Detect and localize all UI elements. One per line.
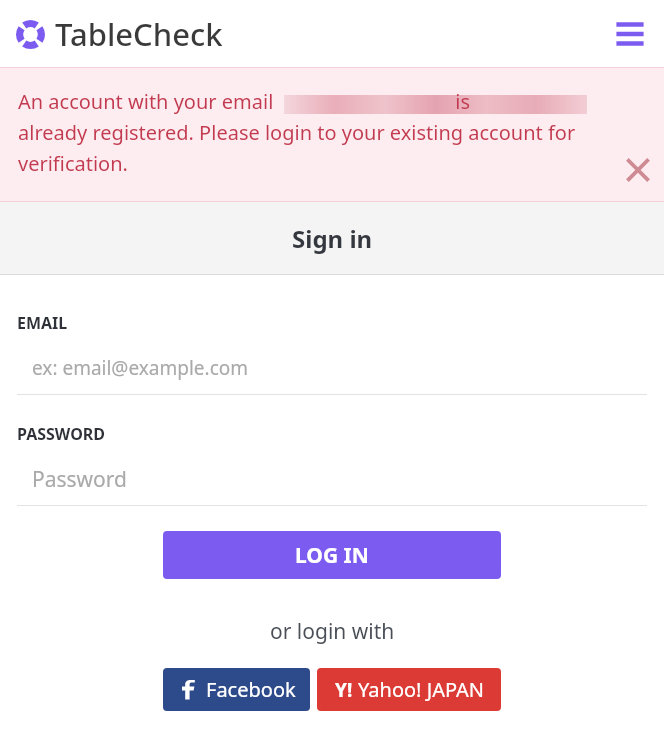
- staticText: LOG IN: [295, 541, 369, 570]
- button[interactable]: Open navigation menu: [613, 17, 647, 51]
- staticText: ex: email@example.com: [32, 355, 249, 381]
- staticText: TableCheck: [55, 13, 223, 55]
- button[interactable]: TableCheck: [16, 13, 223, 55]
- staticText: Facebook: [206, 676, 296, 703]
- staticText: Sign in: [292, 222, 373, 255]
- button[interactable]: Password: [17, 465, 647, 497]
- staticText: PASSWORD: [17, 423, 106, 445]
- staticText: Password: [32, 465, 127, 494]
- button[interactable]: LOG IN: [163, 531, 501, 579]
- staticText: EMAIL: [17, 312, 68, 334]
- button[interactable]: ex: email@example.com: [17, 355, 647, 385]
- staticText: Yahoo! JAPAN: [358, 676, 484, 703]
- staticText: An account with your email is already re…: [18, 88, 576, 177]
- button[interactable]: Facebook: [163, 668, 310, 711]
- button[interactable]: Y!: [317, 668, 501, 711]
- staticText: or login with: [270, 617, 395, 646]
- staticText: Y!: [335, 677, 353, 703]
- button[interactable]: Dismiss alert: [624, 156, 652, 184]
